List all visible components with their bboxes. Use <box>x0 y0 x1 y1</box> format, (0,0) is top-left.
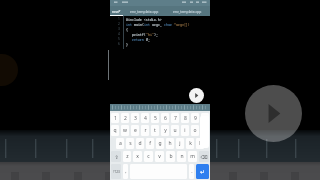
staticText: u <box>173 127 177 134</box>
button[interactable]: c <box>144 151 153 162</box>
staticText: int <box>144 22 152 26</box>
button[interactable]: ⇧ <box>111 151 121 162</box>
button[interactable]: e <box>131 125 139 136</box>
staticText: w <box>123 127 127 134</box>
staticText: int <box>126 22 134 26</box>
staticText: ↵ <box>200 168 206 175</box>
button[interactable]: , <box>123 164 128 179</box>
staticText: m <box>190 153 195 160</box>
staticText: k <box>189 140 192 147</box>
staticText: c <box>147 153 150 160</box>
button[interactable]: i <box>181 125 189 136</box>
button[interactable]: g <box>156 138 164 149</box>
staticText: l <box>199 140 201 147</box>
staticText: f <box>149 140 151 147</box>
staticText: 4 <box>144 115 147 122</box>
staticText: o <box>193 127 197 134</box>
staticText: 9 <box>194 115 197 122</box>
button[interactable]: t <box>151 125 159 136</box>
staticText: char <box>164 22 174 26</box>
staticText: 5 <box>154 115 157 122</box>
staticText: 8 <box>184 115 187 122</box>
staticText: n <box>180 153 184 160</box>
staticText: 6 <box>118 42 120 46</box>
staticText: y <box>164 127 167 134</box>
button[interactable]: o <box>191 125 199 136</box>
staticText: "hi" <box>146 32 154 36</box>
staticText: 5 <box>118 37 120 41</box>
staticText: e <box>134 127 137 134</box>
staticText: d <box>138 140 142 147</box>
staticText: 2 <box>118 22 120 26</box>
staticText: 4 <box>118 32 120 36</box>
button[interactable]: k <box>186 138 194 149</box>
button[interactable]: env_template.cpp <box>166 6 209 16</box>
button[interactable]: n <box>177 151 186 162</box>
button[interactable]: b <box>166 151 175 162</box>
button[interactable]: env_template.cpp <box>123 6 166 16</box>
staticText: x <box>136 153 139 160</box>
staticText: 3 <box>118 27 120 31</box>
staticText: i <box>184 127 186 134</box>
staticText: g <box>158 140 162 147</box>
button[interactable]: 2 <box>121 113 129 123</box>
button[interactable]: 9 <box>191 113 199 123</box>
button[interactable]: Play <box>245 85 302 142</box>
button[interactable]: 1 <box>111 113 119 123</box>
staticText: v <box>158 153 161 160</box>
staticText: a <box>119 140 122 147</box>
button[interactable]: ?123 <box>111 164 121 179</box>
button[interactable]: 5 <box>151 113 159 123</box>
button[interactable]: s <box>126 138 134 149</box>
staticText: , <box>125 168 127 175</box>
button[interactable]: z <box>123 151 131 162</box>
button[interactable]: 4 <box>141 113 149 123</box>
button[interactable]: Enter <box>196 164 209 179</box>
button[interactable]: x <box>133 151 142 162</box>
staticText: return <box>126 37 146 41</box>
staticText: ⇧ <box>114 154 119 160</box>
button[interactable]: a <box>116 138 124 149</box>
button[interactable]: y <box>161 125 169 136</box>
button[interactable]: 3 <box>131 113 139 123</box>
button[interactable]: m <box>188 151 197 162</box>
staticText: h <box>168 140 172 147</box>
staticText: ?123 <box>113 170 120 174</box>
staticText: ( <box>142 22 144 26</box>
staticText: env_template.cpp <box>173 9 202 14</box>
button[interactable]: new* <box>110 6 123 16</box>
button[interactable]: j <box>176 138 184 149</box>
staticText: 1 <box>118 17 120 21</box>
staticText: . <box>191 168 193 175</box>
button[interactable]: . <box>189 164 194 179</box>
staticText: { <box>126 27 128 31</box>
staticText: r <box>144 127 147 134</box>
staticText: s <box>129 140 132 147</box>
button[interactable]: 7 <box>171 113 179 123</box>
staticText: printf( <box>126 32 146 36</box>
staticText: 2 <box>124 115 127 122</box>
button[interactable]: q <box>111 125 119 136</box>
button[interactable]: l <box>196 138 204 149</box>
button[interactable]: r <box>141 125 149 136</box>
button[interactable]: u <box>171 125 179 136</box>
staticText: 1 <box>114 115 117 122</box>
button[interactable]: w <box>121 125 129 136</box>
button[interactable]: Play video <box>189 88 204 103</box>
button[interactable]: 8 <box>181 113 189 123</box>
button[interactable]: h <box>166 138 174 149</box>
button[interactable]: d <box>136 138 144 149</box>
staticText: j <box>179 140 181 147</box>
button[interactable]: f <box>146 138 154 149</box>
button[interactable]: v <box>155 151 164 162</box>
staticText: 0; <box>146 37 150 41</box>
staticText: new* <box>112 9 121 14</box>
staticText: q <box>113 127 117 134</box>
staticText: main <box>134 22 142 26</box>
button[interactable]: ⌫ <box>199 151 209 162</box>
button[interactable]: 6 <box>161 113 169 123</box>
